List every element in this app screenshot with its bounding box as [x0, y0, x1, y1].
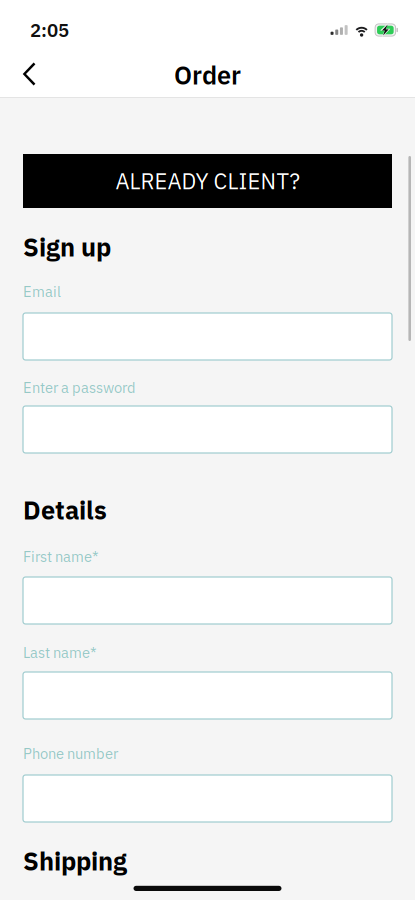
button[interactable] — [23, 577, 392, 624]
staticText: Sign up — [23, 230, 111, 263]
button[interactable] — [23, 313, 392, 360]
staticText: Shipping — [23, 844, 127, 877]
staticText: 2:05 — [30, 18, 69, 42]
staticText: ALREADY CLIENT? — [115, 167, 299, 195]
staticText: Order — [174, 58, 241, 91]
staticText: Details — [23, 493, 107, 526]
staticText: Phone number — [23, 744, 118, 763]
staticText: First name* — [23, 547, 99, 566]
button[interactable] — [23, 406, 392, 453]
button[interactable] — [23, 672, 392, 719]
staticText: Last name* — [23, 643, 97, 662]
button[interactable] — [23, 775, 392, 822]
button[interactable]: Back — [6, 48, 52, 97]
staticText: Enter a password — [23, 378, 136, 397]
button[interactable]: ALREADY CLIENT? — [23, 154, 392, 208]
staticText: Email — [23, 282, 61, 301]
